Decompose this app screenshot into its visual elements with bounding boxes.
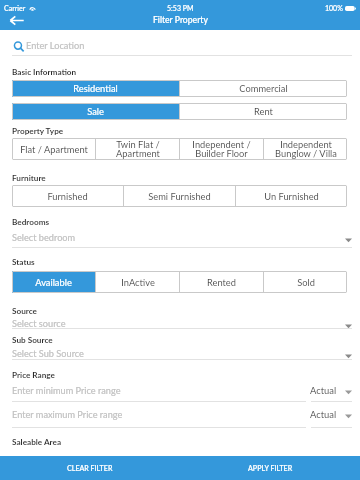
- staticText: Furnished: [47, 191, 88, 202]
- staticText: Saleable Area: [12, 437, 62, 447]
- button[interactable]: Available: [12, 271, 95, 293]
- staticText: Available: [35, 277, 72, 288]
- button[interactable]: Residential: [12, 80, 179, 97]
- staticText: Independent Bunglow / Villa: [275, 139, 337, 159]
- staticText: Semi Furnished: [148, 191, 211, 202]
- staticText: 5:53 PM: [167, 4, 194, 12]
- staticText: Twin Flat / Apartment: [116, 139, 160, 159]
- staticText: Bedrooms: [12, 217, 50, 227]
- button[interactable]: Independent / Builder Floor: [180, 138, 263, 160]
- staticText: Price Range: [12, 370, 55, 380]
- button[interactable]: APPLY FILTER: [180, 456, 360, 480]
- staticText: Independent / Builder Floor: [192, 139, 251, 159]
- staticText: Flat / Apartment: [20, 144, 88, 155]
- staticText: Enter maximum Price range: [12, 409, 123, 420]
- button[interactable]: Furnished: [12, 185, 123, 207]
- button[interactable]: Enter minimum Price range: [12, 385, 121, 396]
- button[interactable]: Rented: [180, 271, 263, 293]
- button[interactable]: Enter Location: [12, 36, 347, 54]
- staticText: Rented: [207, 277, 236, 288]
- staticText: Filter Property: [153, 15, 208, 25]
- staticText: Sub Source: [12, 335, 53, 345]
- staticText: Basic Information: [12, 67, 77, 77]
- button[interactable]: Actual: [310, 407, 352, 422]
- button[interactable]: Actual: [310, 383, 352, 398]
- staticText: APPLY FILTER: [248, 464, 293, 473]
- button[interactable]: Flat / Apartment: [12, 138, 95, 160]
- staticText: Actual: [310, 385, 337, 396]
- button[interactable]: Enter maximum Price range: [12, 409, 123, 420]
- button[interactable]: Twin Flat / Apartment: [96, 138, 179, 160]
- staticText: Enter minimum Price range: [12, 385, 121, 396]
- button[interactable]: Select bedroom: [12, 230, 352, 245]
- staticText: Carrier: [4, 4, 26, 12]
- staticText: Select Sub Source: [12, 348, 84, 359]
- button[interactable]: Sale: [12, 103, 179, 120]
- staticText: Un Furnished: [264, 191, 319, 202]
- staticText: Select bedroom: [12, 232, 76, 243]
- button[interactable]: CLEAR FILTER: [0, 456, 180, 480]
- staticText: Select source: [12, 318, 66, 329]
- button[interactable]: Select Sub Source: [12, 346, 352, 361]
- button[interactable]: Independent Bunglow / Villa: [264, 138, 347, 160]
- staticText: InActive: [121, 277, 155, 288]
- button[interactable]: Rent: [180, 103, 347, 120]
- staticText: Actual: [310, 409, 337, 420]
- staticText: Rent: [254, 106, 273, 117]
- staticText: Commercial: [239, 83, 288, 94]
- button[interactable]: InActive: [96, 271, 179, 293]
- staticText: CLEAR FILTER: [67, 464, 113, 473]
- staticText: Enter Location: [26, 40, 85, 51]
- staticText: Property Type: [12, 126, 64, 136]
- button[interactable]: Commercial: [180, 80, 347, 97]
- button[interactable]: Un Furnished: [236, 185, 347, 207]
- staticText: 100%: [325, 4, 343, 12]
- staticText: Sale: [87, 106, 104, 117]
- staticText: Status: [12, 257, 35, 267]
- button[interactable]: Sold: [264, 271, 347, 293]
- button[interactable]: Semi Furnished: [124, 185, 235, 207]
- staticText: Residential: [73, 83, 118, 94]
- button[interactable]: Back: [8, 13, 26, 27]
- staticText: Source: [12, 306, 37, 316]
- staticText: Sold: [297, 277, 315, 288]
- staticText: Furniture: [12, 173, 46, 183]
- button[interactable]: Select source: [12, 316, 352, 331]
